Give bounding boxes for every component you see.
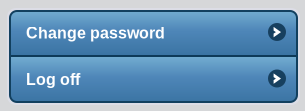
button[interactable]: Log off <box>10 57 297 102</box>
staticText: Change password <box>26 24 165 42</box>
staticText: Log off <box>26 71 80 88</box>
button[interactable]: Change password <box>10 11 297 55</box>
